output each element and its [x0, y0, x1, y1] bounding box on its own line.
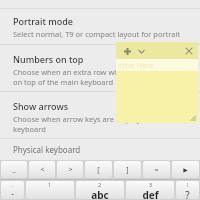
button[interactable]: Show arrows: [0, 92, 200, 138]
button[interactable]: !: [176, 181, 199, 199]
staticText: !: [187, 181, 189, 188]
staticText: >: [68, 165, 73, 175]
staticText: Portrait mode: [13, 15, 74, 27]
button[interactable]: Add note: [121, 45, 133, 57]
staticText: -: [11, 188, 14, 199]
staticText: Select normal, T9 or compact layout for …: [13, 29, 181, 39]
staticText: _: [12, 165, 16, 175]
button[interactable]: 3: [126, 181, 174, 199]
staticText: keyboard: [13, 124, 46, 134]
button[interactable]: Close: [182, 44, 195, 57]
button[interactable]: type Here: [116, 59, 198, 71]
button[interactable]: <: [29, 161, 55, 178]
staticText: type Here: [119, 60, 154, 70]
staticText: on top of the main keyboard: [13, 77, 114, 87]
staticText: 3: [149, 181, 153, 188]
button[interactable]: Portrait mode: [0, 9, 200, 43]
button[interactable]: 2: [76, 181, 124, 199]
staticText: Show arrows: [13, 100, 69, 112]
staticText: Numbers on top: [13, 53, 84, 65]
staticText: ▶: [183, 166, 188, 173]
button[interactable]: [: [85, 161, 112, 178]
staticText: abc: [91, 188, 109, 199]
staticText: Choose when arrow keys are displayed on …: [13, 114, 175, 124]
staticText: .: [12, 181, 14, 188]
button[interactable]: Numbers on top: [0, 45, 200, 91]
staticText: ?: [185, 188, 190, 199]
staticText: Choose when an extra row with numbers is…: [13, 67, 190, 77]
staticText: [: [97, 165, 100, 175]
button[interactable]: _: [1, 161, 27, 178]
button[interactable]: =: [143, 161, 170, 178]
staticText: def: [142, 188, 159, 199]
button[interactable]: .: [1, 181, 24, 199]
button[interactable]: >: [57, 161, 83, 178]
staticText: Physical keyboard: [13, 144, 81, 155]
button[interactable]: More options: [135, 45, 147, 57]
button[interactable]: ]: [114, 161, 141, 178]
staticText: <: [40, 165, 45, 175]
staticText: 2: [98, 181, 102, 188]
staticText: =: [154, 165, 159, 175]
staticText: ]: [126, 165, 129, 175]
button[interactable]: ▶: [172, 161, 199, 178]
staticText: 1: [48, 181, 52, 188]
button[interactable]: 1: [26, 181, 74, 199]
